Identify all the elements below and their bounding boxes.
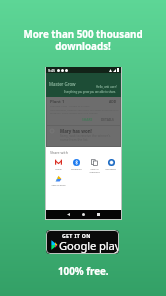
button[interactable]: Back — [63, 210, 74, 219]
staticText: ADD — [109, 99, 117, 104]
button[interactable]: Get it on Google Play — [46, 230, 119, 254]
staticText: Google play — [59, 238, 119, 253]
button[interactable]: Plant 1 — [47, 97, 120, 125]
staticText: More than 500 thousand downloads! — [23, 28, 143, 53]
staticText: Master Grow — [49, 81, 76, 87]
button[interactable]: Messages — [103, 158, 118, 171]
staticText: Share with — [50, 150, 68, 155]
staticText: Gmail — [55, 168, 62, 171]
button[interactable]: Mary has won! — [47, 126, 120, 146]
staticText: 9:45 — [48, 68, 55, 73]
button[interactable]: Home — [78, 210, 89, 219]
staticText: DETAILS — [101, 118, 114, 122]
button[interactable]: Save to Drive — [49, 174, 67, 187]
staticText: Plant 1 — [50, 99, 65, 105]
button[interactable]: Recents — [93, 210, 104, 219]
staticText: Everything you grow you are able to shar… — [64, 90, 117, 94]
staticText: GET IT ON — [62, 232, 91, 239]
staticText: Messages — [105, 168, 116, 171]
staticText: Copy to clipboard — [89, 168, 100, 174]
button[interactable]: SHARE — [81, 118, 94, 122]
button[interactable]: Copy to clipboard — [85, 158, 103, 174]
button[interactable]: Bluetooth — [67, 158, 85, 171]
staticText: Hello, anti user! — [96, 85, 117, 89]
button[interactable]: DETAILS — [100, 118, 115, 122]
staticText: Bluetooth — [71, 168, 82, 171]
staticText: Mary has won! — [60, 128, 92, 134]
staticText: 100% free. — [58, 265, 109, 278]
staticText: SHARE — [82, 118, 93, 122]
staticText: Save to Drive — [51, 184, 66, 187]
button[interactable]: Gmail — [49, 158, 67, 171]
